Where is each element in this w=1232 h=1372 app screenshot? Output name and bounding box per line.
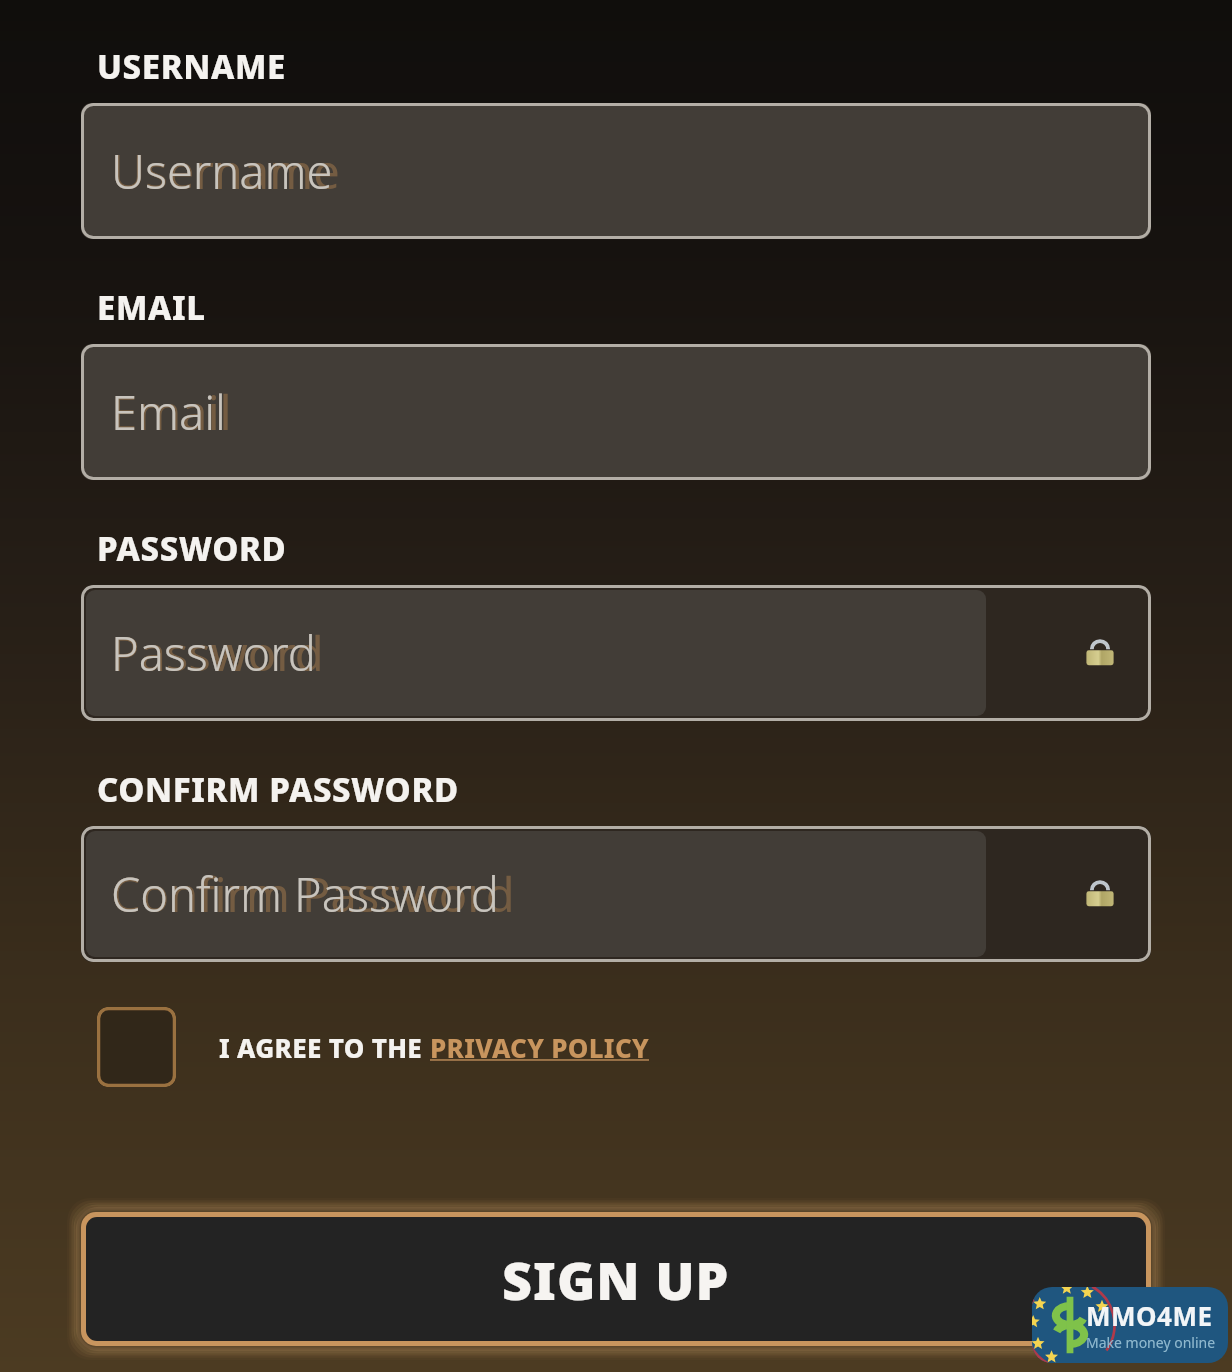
staticText: EMAIL: [97, 285, 206, 330]
staticText: Make money online: [1086, 1333, 1216, 1352]
staticText: I AGREE TO THE: [219, 1030, 430, 1065]
staticText: PASSWORD: [97, 526, 287, 571]
button[interactable]: Email: [81, 344, 1151, 480]
other: Password hidden: [1083, 636, 1117, 670]
other: Password hidden: [1083, 877, 1117, 911]
staticText: MMO4ME: [1086, 1298, 1213, 1333]
button[interactable]: SIGN UP: [81, 1212, 1151, 1346]
staticText: Username: [111, 139, 340, 203]
staticText: Username: [111, 139, 333, 203]
staticText: Email: [111, 380, 226, 444]
button[interactable]: Password hidden: [81, 826, 1151, 962]
button[interactable]: Username: [81, 103, 1151, 239]
button[interactable]: I agree checkbox: [97, 1007, 649, 1087]
button[interactable]: Password hidden: [81, 585, 1151, 721]
other: I agree checkbox: [97, 1007, 176, 1087]
staticText: Confirm Password: [111, 862, 515, 926]
staticText: Email: [111, 380, 232, 444]
button[interactable]: PRIVACY POLICY: [430, 1030, 649, 1065]
staticText: Confirm Password: [111, 862, 499, 926]
staticText: Password: [111, 621, 324, 685]
staticText: Password: [111, 621, 316, 685]
staticText: USERNAME: [97, 44, 286, 89]
staticText: CONFIRM PASSWORD: [97, 767, 459, 812]
staticText: SIGN UP: [502, 1244, 730, 1315]
